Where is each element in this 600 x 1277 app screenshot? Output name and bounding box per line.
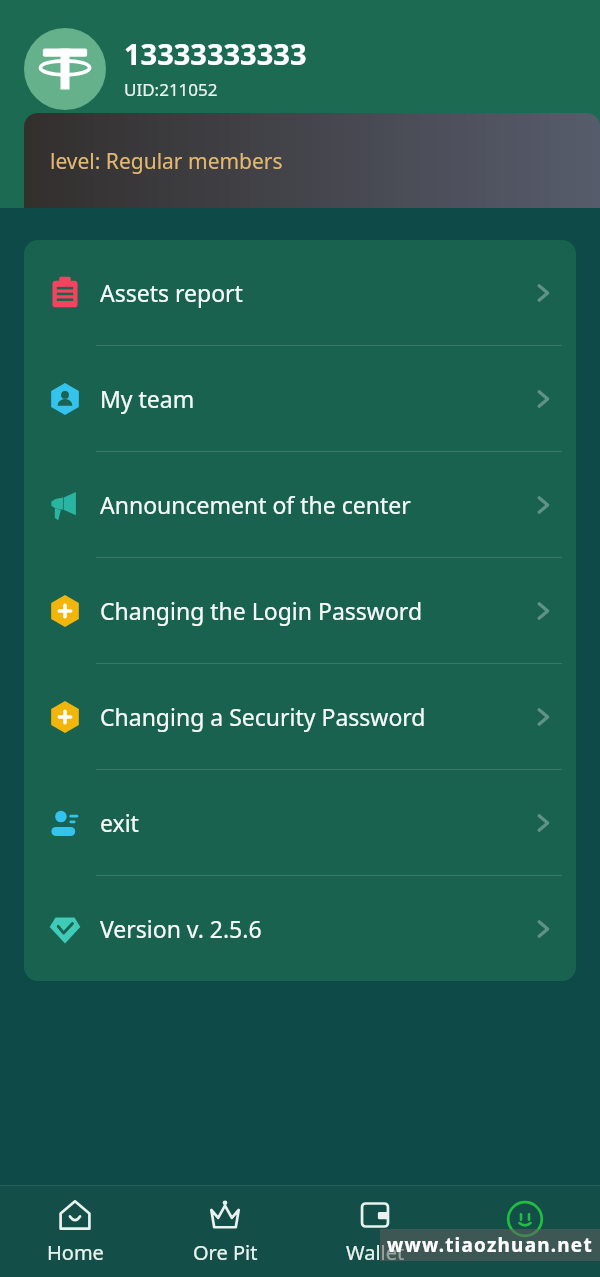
- button[interactable]: Announcement of the center: [24, 452, 576, 557]
- staticText: level: Regular members: [50, 147, 283, 176]
- staticText: 13333333333: [124, 34, 307, 73]
- button[interactable]: [450, 1185, 600, 1277]
- button[interactable]: Changing the Login Password: [24, 558, 576, 663]
- staticText: My team: [100, 383, 195, 414]
- staticText: Ore Pit: [193, 1239, 258, 1266]
- staticText: Announcement of the center: [100, 489, 411, 520]
- button[interactable]: Wallet: [300, 1185, 450, 1277]
- button[interactable]: Home: [0, 1185, 150, 1277]
- button[interactable]: Ore Pit: [150, 1185, 300, 1277]
- button[interactable]: exit: [24, 770, 576, 875]
- button[interactable]: Version v. 2.5.6: [24, 876, 576, 981]
- staticText: UID:211052: [124, 78, 218, 101]
- button[interactable]: level: Regular members: [24, 113, 600, 208]
- button[interactable]: Assets report: [24, 240, 576, 345]
- other: Profile avatar: [24, 28, 106, 110]
- button[interactable]: Changing a Security Password: [24, 664, 576, 769]
- staticText: Changing the Login Password: [100, 595, 423, 626]
- staticText: www.tiaozhuan.net: [387, 1232, 593, 1258]
- staticText: Changing a Security Password: [100, 701, 426, 732]
- staticText: Assets report: [100, 277, 243, 308]
- staticText: Home: [47, 1239, 104, 1266]
- staticText: Wallet: [346, 1239, 405, 1266]
- staticText: exit: [100, 807, 139, 838]
- staticText: Version v. 2.5.6: [100, 913, 262, 944]
- button[interactable]: My team: [24, 346, 576, 451]
